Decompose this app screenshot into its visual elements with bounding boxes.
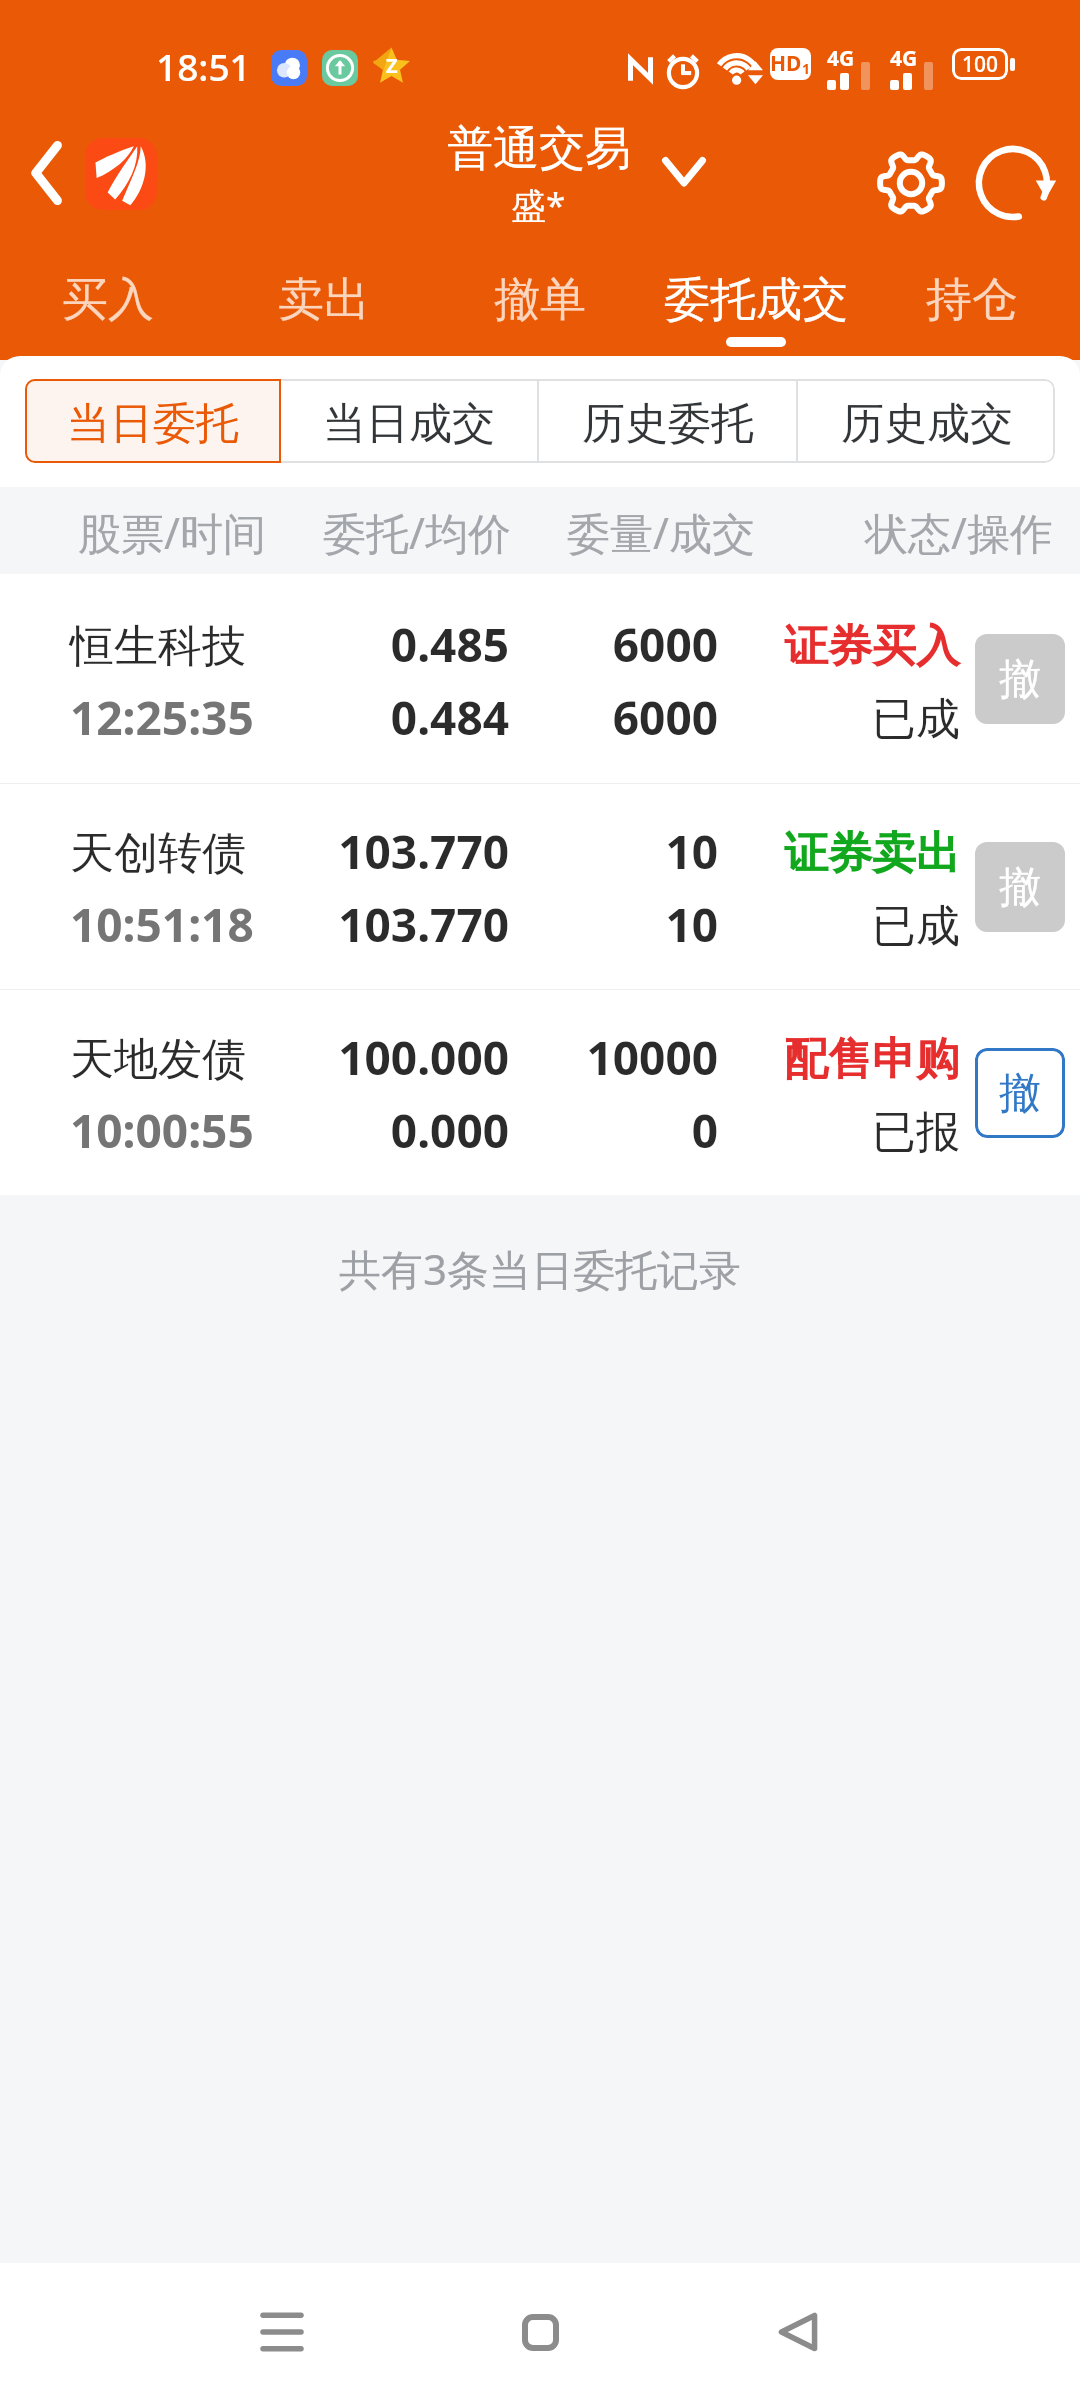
staticText: 天地发债 <box>70 1032 246 1087</box>
staticText: Z <box>386 52 398 79</box>
staticText: 10 <box>518 820 718 883</box>
button[interactable]: 撤 <box>975 842 1065 932</box>
staticText: 100 <box>962 50 999 79</box>
button[interactable]: 撤 <box>975 1048 1065 1138</box>
staticText: 委托成交 <box>664 271 848 329</box>
button[interactable]: Back <box>738 2272 858 2392</box>
button[interactable]: App logo <box>85 138 157 210</box>
staticText: 0.000 <box>259 1099 509 1162</box>
staticText: 撤 <box>999 861 1041 914</box>
staticText: 历史委托 <box>582 397 754 451</box>
staticText: 已成 <box>736 899 960 954</box>
staticText: 共有3条当日委托记录 <box>339 1240 742 1297</box>
staticText: HD <box>770 49 802 78</box>
button[interactable]: 当日委托 <box>25 379 281 463</box>
staticText: 状态/操作 <box>865 503 1053 562</box>
staticText: 0.484 <box>259 686 509 749</box>
staticText: 普通交易 <box>447 120 631 178</box>
button[interactable]: Home <box>480 2272 600 2392</box>
button[interactable]: 天地发债 <box>0 990 1080 1195</box>
button[interactable]: Refresh <box>965 133 1065 233</box>
staticText: 卖出 <box>278 271 370 329</box>
staticText: 盛* <box>511 181 566 229</box>
button[interactable]: 撤单 <box>432 250 648 356</box>
button[interactable]: Recent apps <box>222 2272 342 2392</box>
staticText: 配售申购 <box>736 1032 960 1087</box>
button[interactable]: Settings <box>861 133 961 233</box>
staticText: 历史成交 <box>841 397 1013 451</box>
button[interactable]: 持仓 <box>864 250 1080 356</box>
button[interactable]: 撤 <box>975 634 1065 724</box>
staticText: 10 <box>518 893 718 956</box>
button[interactable]: 买入 <box>0 250 216 356</box>
staticText: 当日委托 <box>67 397 239 451</box>
staticText: 18:51 <box>156 41 251 91</box>
staticText: 6000 <box>518 686 718 749</box>
staticText: 100.000 <box>259 1026 509 1089</box>
button[interactable]: 历史委托 <box>539 379 796 463</box>
button[interactable]: Back <box>4 131 88 215</box>
staticText: 股票/时间 <box>78 503 266 562</box>
staticText: 证券买入 <box>736 619 960 674</box>
button[interactable]: 当日成交 <box>281 379 537 463</box>
staticText: 10:00:55 <box>70 1099 254 1162</box>
staticText: 10:51:18 <box>70 893 254 956</box>
button[interactable]: 委托成交 <box>648 250 864 356</box>
button[interactable]: 历史成交 <box>798 379 1055 463</box>
button[interactable]: 恒生科技 <box>0 574 1080 783</box>
staticText: 12:25:35 <box>70 686 254 749</box>
button[interactable]: 天创转债 <box>0 784 1080 989</box>
staticText: 103.770 <box>259 820 509 883</box>
staticText: 委量/成交 <box>567 503 755 562</box>
staticText: 4G <box>827 44 855 73</box>
staticText: 证券卖出 <box>736 826 960 881</box>
staticText: 撤 <box>999 653 1041 706</box>
staticText: 撤 <box>999 1067 1041 1120</box>
staticText: 0.485 <box>259 613 509 676</box>
staticText: 天创转债 <box>70 826 246 881</box>
staticText: 4G <box>890 44 918 73</box>
staticText: 撤单 <box>494 271 586 329</box>
staticText: 已成 <box>736 692 960 747</box>
staticText: 6000 <box>518 613 718 676</box>
staticText: 103.770 <box>259 893 509 956</box>
staticText: 10000 <box>518 1026 718 1089</box>
staticText: 恒生科技 <box>70 619 246 674</box>
button[interactable]: 卖出 <box>216 250 432 356</box>
staticText: 委托/均价 <box>323 503 511 562</box>
staticText: 当日成交 <box>323 397 495 451</box>
staticText: 持仓 <box>926 271 1018 329</box>
button[interactable]: 普通交易 <box>430 110 720 250</box>
staticText: 买入 <box>62 271 154 329</box>
staticText: 1 <box>802 59 811 78</box>
staticText: 0 <box>518 1099 718 1162</box>
staticText: 已报 <box>736 1105 960 1160</box>
